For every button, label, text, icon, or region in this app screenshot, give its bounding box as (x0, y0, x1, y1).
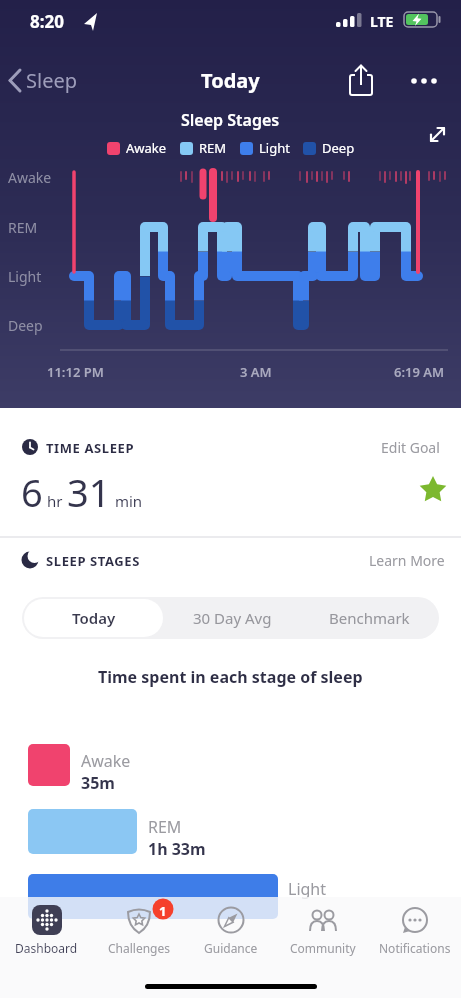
staticText: Light (8, 267, 42, 286)
staticText: 6 (21, 466, 43, 518)
staticText: Benchmark (329, 608, 410, 628)
staticText: 1h 33m (148, 838, 206, 860)
staticText: Notifications (379, 940, 451, 956)
button[interactable]: Edit Goal (381, 438, 440, 457)
staticText: hr (43, 491, 67, 511)
button[interactable]: Dashboard (0, 902, 93, 956)
staticText: Light (288, 878, 327, 900)
staticText: Awake (126, 139, 167, 157)
staticText: Awake (81, 750, 131, 772)
staticText: 3 AM (240, 363, 272, 381)
button[interactable]: 30 Day Avg (163, 599, 302, 637)
button[interactable]: Benchmark (302, 599, 437, 637)
staticText: 8:20 (30, 10, 64, 33)
staticText: 6:19 AM (394, 363, 445, 381)
staticText: Sleep Stages (181, 109, 280, 131)
button[interactable]: Guidance (185, 902, 277, 956)
staticText: 35m (81, 772, 115, 794)
staticText: Guidance (204, 940, 258, 956)
staticText: REM (148, 816, 182, 838)
staticText: 31 (67, 466, 111, 518)
button[interactable]: Learn More (369, 551, 445, 570)
staticText: Awake (8, 168, 52, 187)
button[interactable]: 1 (93, 902, 185, 956)
staticText: Challenges (108, 940, 171, 956)
staticText: REM (199, 139, 227, 157)
staticText: Light (259, 139, 290, 157)
staticText: Dashboard (15, 940, 78, 956)
staticText: Today (72, 608, 116, 628)
staticText: 11:12 PM (47, 363, 104, 381)
button[interactable]: Notifications (369, 902, 461, 956)
staticText: Today (201, 67, 260, 94)
button[interactable]: Today (24, 599, 163, 637)
staticText: min (111, 491, 143, 511)
staticText: 30 Day Avg (193, 608, 272, 628)
staticText: LTE (370, 12, 394, 31)
staticText: Deep (8, 316, 43, 335)
button[interactable]: Community (277, 902, 369, 956)
staticText: Time spent in each stage of sleep (98, 666, 363, 688)
button[interactable]: Sleep (26, 67, 77, 94)
staticText: REM (8, 218, 38, 237)
staticText: Deep (322, 139, 355, 157)
staticText: SLEEP STAGES (46, 552, 140, 570)
staticText: TIME ASLEEP (46, 439, 135, 457)
staticText: 1 (159, 902, 167, 920)
staticText: Community (290, 940, 356, 956)
